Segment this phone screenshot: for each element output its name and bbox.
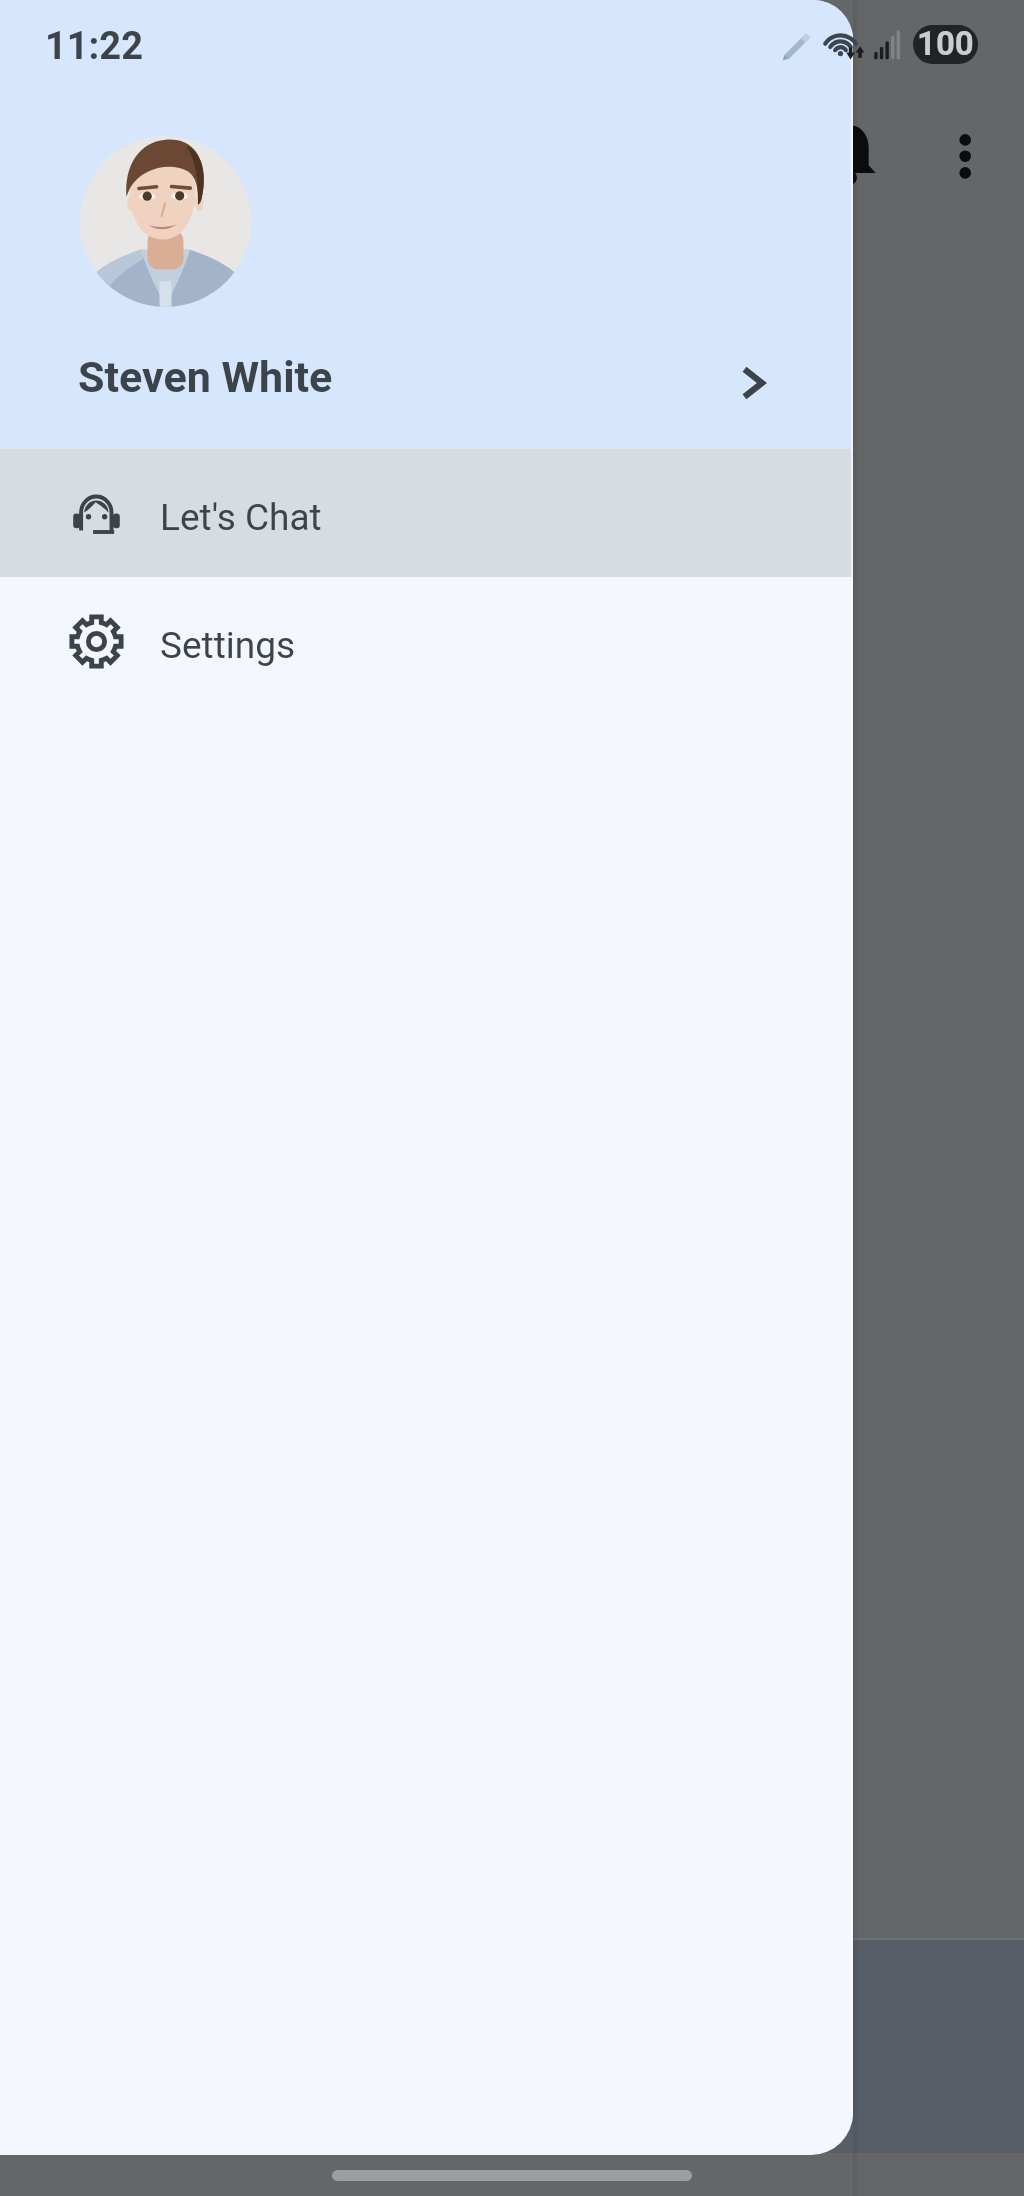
staticText: 11:22 [45,24,143,69]
staticText: Let's Chat [160,496,322,539]
button[interactable]: Let's Chat [0,449,853,577]
button[interactable]: Notifications [806,107,894,195]
button[interactable]: More options [921,107,1009,195]
staticText: Steven White [78,352,333,402]
staticText: Settings [160,624,296,667]
staticText: 100 [917,25,974,63]
button[interactable] [0,1940,1024,2153]
button[interactable]: Open profile [704,335,800,431]
button[interactable]: Settings [0,577,853,705]
button[interactable]: Steven White [0,0,853,449]
